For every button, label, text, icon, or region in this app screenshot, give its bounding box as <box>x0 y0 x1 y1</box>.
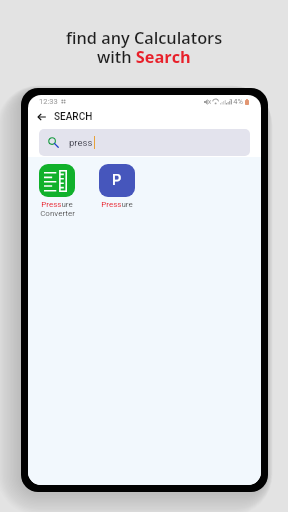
staticText: find any Calculators <box>66 27 223 49</box>
button[interactable]: press <box>39 129 250 156</box>
staticText: 14% <box>229 97 243 106</box>
staticText: Pressure <box>101 200 133 209</box>
button[interactable]: Pressure <box>28 164 87 218</box>
staticText: Converter <box>40 209 75 218</box>
staticText: 12:33 <box>39 97 58 106</box>
staticText: with Search <box>97 46 191 68</box>
staticText: P <box>112 172 122 189</box>
button[interactable]: Back <box>33 109 49 125</box>
button[interactable]: P <box>87 164 147 209</box>
staticText: Pressure <box>41 200 73 209</box>
staticText: SEARCH <box>54 111 93 123</box>
staticText: press <box>69 137 93 148</box>
